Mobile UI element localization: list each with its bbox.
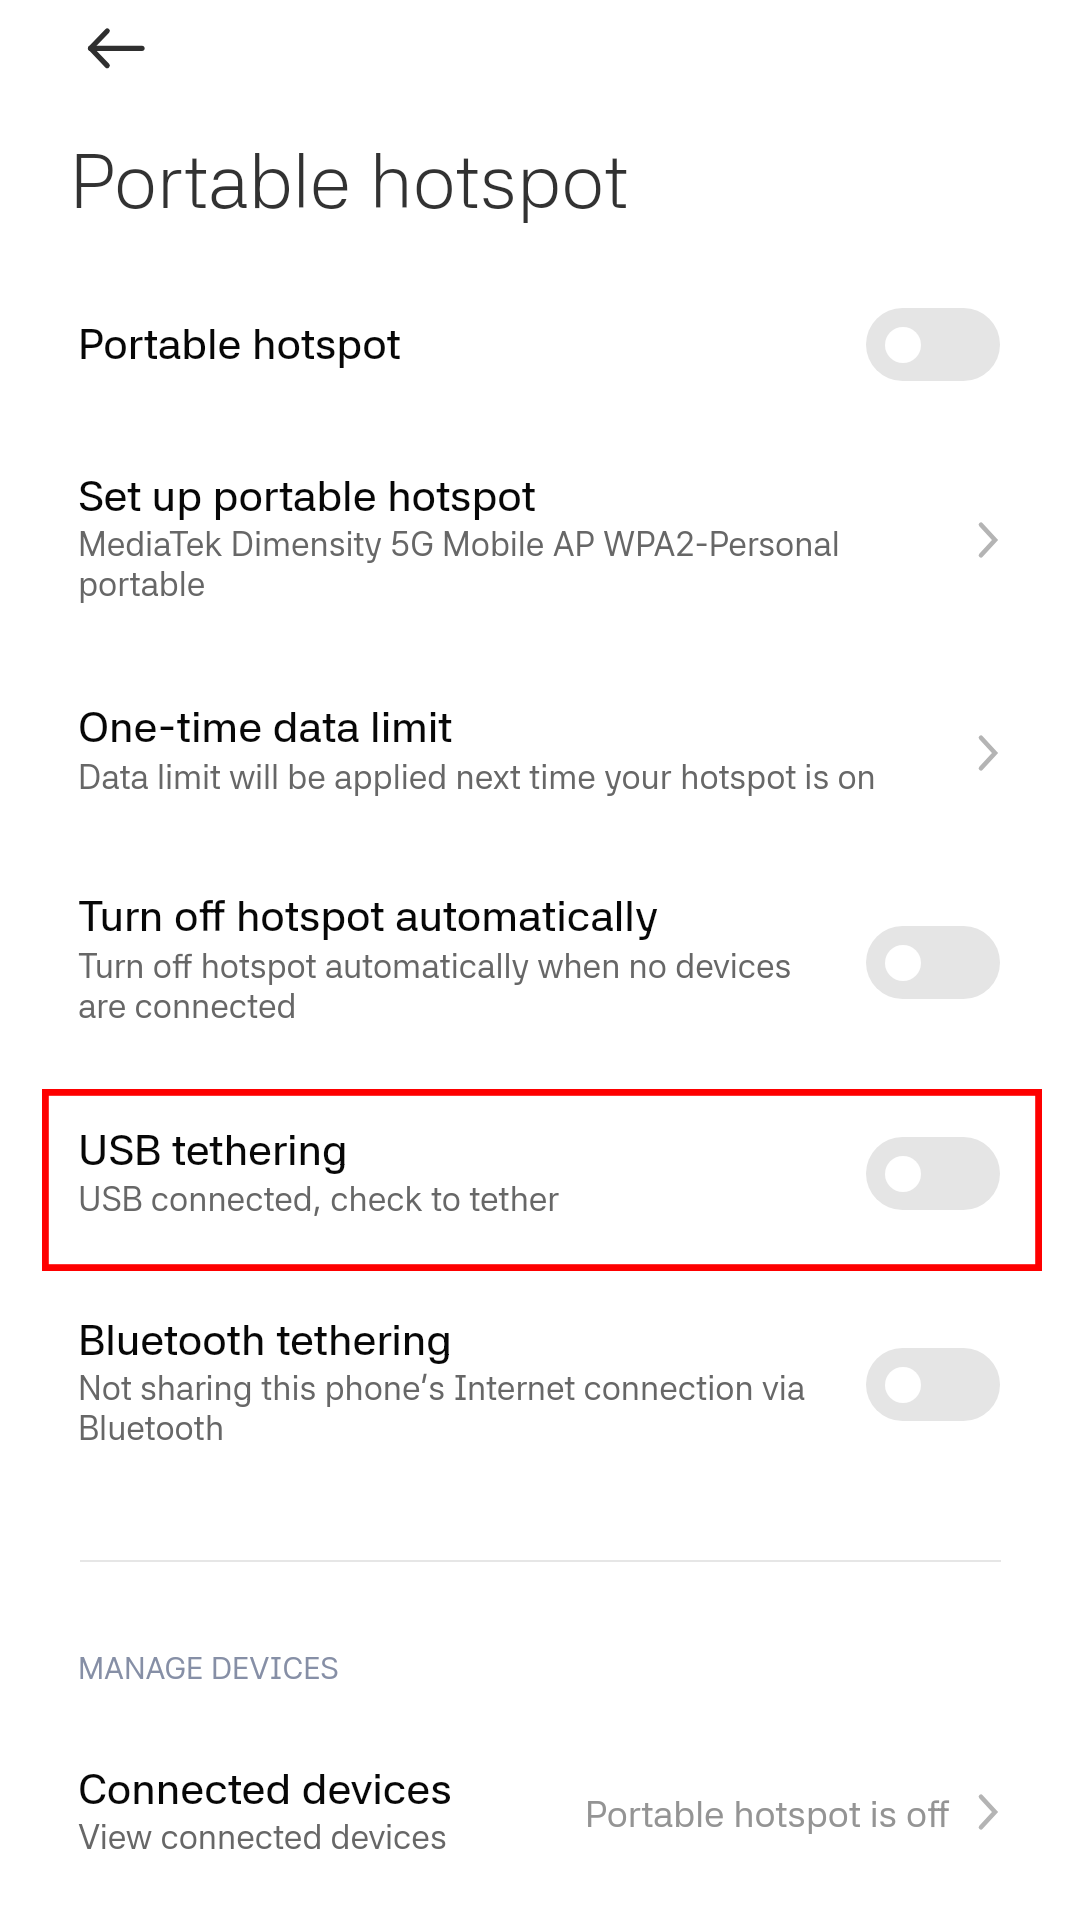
button[interactable]: Turn off hotspot automatically [866, 926, 1000, 999]
staticText: Not sharing this phone’s Internet connec… [78, 1368, 823, 1448]
staticText: USB tethering [78, 1124, 978, 1175]
button[interactable]: Bluetooth tethering [866, 1348, 1000, 1421]
staticText: Bluetooth tethering [78, 1314, 978, 1365]
staticText: Portable hotspot is off [585, 1792, 950, 1836]
staticText: Portable hotspot [78, 318, 978, 369]
staticText: View connected devices [78, 1817, 447, 1857]
button[interactable]: Navigate up [32, 0, 132, 98]
button[interactable]: Portable hotspot [0, 300, 1080, 410]
staticText: Portable hotspot [70, 136, 629, 227]
staticText: Turn off hotspot automatically [78, 890, 978, 941]
staticText: MediaTek Dimensity 5G Mobile AP WPA2-Per… [78, 524, 868, 604]
button[interactable]: Portable hotspot [866, 308, 1000, 381]
button[interactable]: Set up portable hotspot [0, 455, 1080, 635]
button[interactable]: One-time data limit [0, 690, 1080, 825]
staticText: Set up portable hotspot [78, 470, 978, 521]
button[interactable]: USB tethering [0, 1106, 1080, 1241]
staticText: Turn off hotspot automatically when no d… [78, 946, 823, 1026]
button[interactable]: Connected devices [0, 1745, 1080, 1880]
button[interactable]: Bluetooth tethering [0, 1300, 1080, 1480]
button[interactable]: USB tethering [866, 1137, 1000, 1210]
staticText: One-time data limit [78, 701, 978, 752]
staticText: MANAGE DEVICES [78, 1650, 339, 1687]
staticText: Data limit will be applied next time you… [78, 757, 938, 797]
button[interactable]: Turn off hotspot automatically [0, 875, 1080, 1055]
staticText: Connected devices [78, 1763, 452, 1814]
staticText: USB connected, check to tether [78, 1179, 823, 1219]
